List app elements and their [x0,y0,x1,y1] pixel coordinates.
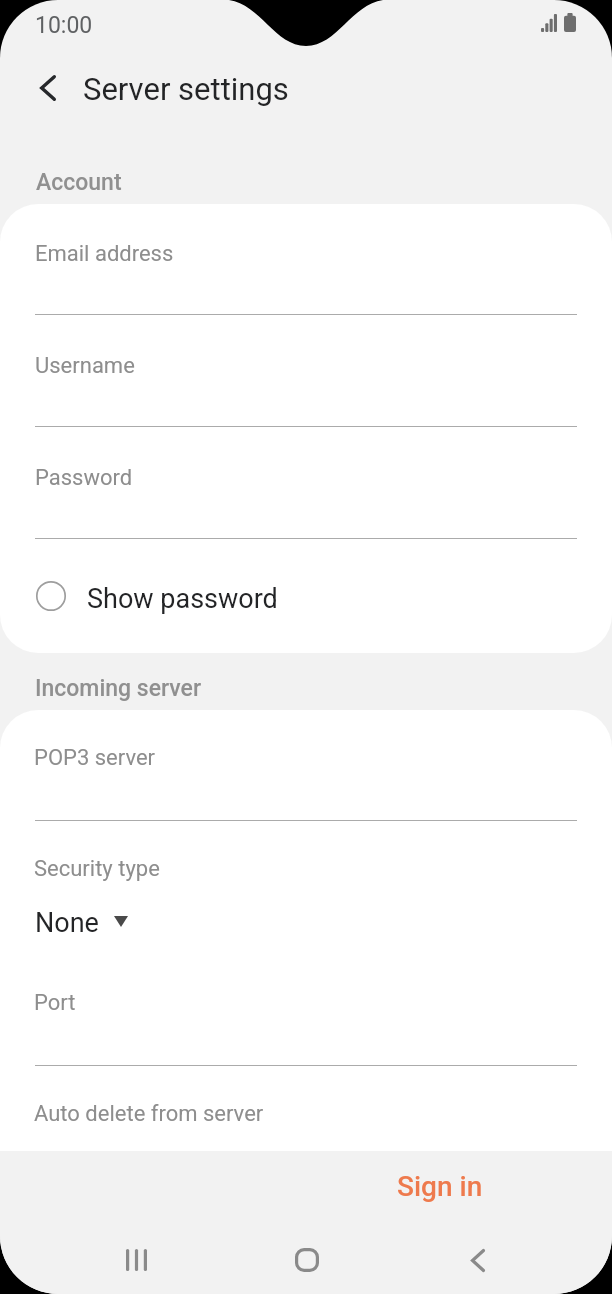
button[interactable]: Back [24,64,72,112]
button[interactable]: Home [266,1230,348,1290]
staticText: Port [34,990,76,1016]
staticText: None [35,907,99,939]
staticText: Account [36,169,122,196]
staticText: POP3 server [34,745,156,771]
staticText: 10:00 [35,12,93,39]
button[interactable]: Sign in [379,1158,501,1215]
button[interactable]: Recent apps [95,1230,177,1290]
staticText: Incoming server [35,675,202,702]
staticText: Email address [35,241,174,267]
staticText: Auto delete from server [34,1101,264,1127]
staticText: Password [35,465,133,491]
staticText: Server settings [83,71,289,107]
staticText: Sign in [397,1170,483,1203]
button[interactable]: Show password [0,568,612,630]
button[interactable]: None [35,907,128,939]
staticText: Show password [87,583,278,615]
staticText: Username [35,353,135,379]
button[interactable]: Back [437,1230,519,1290]
staticText: Security type [34,856,160,882]
